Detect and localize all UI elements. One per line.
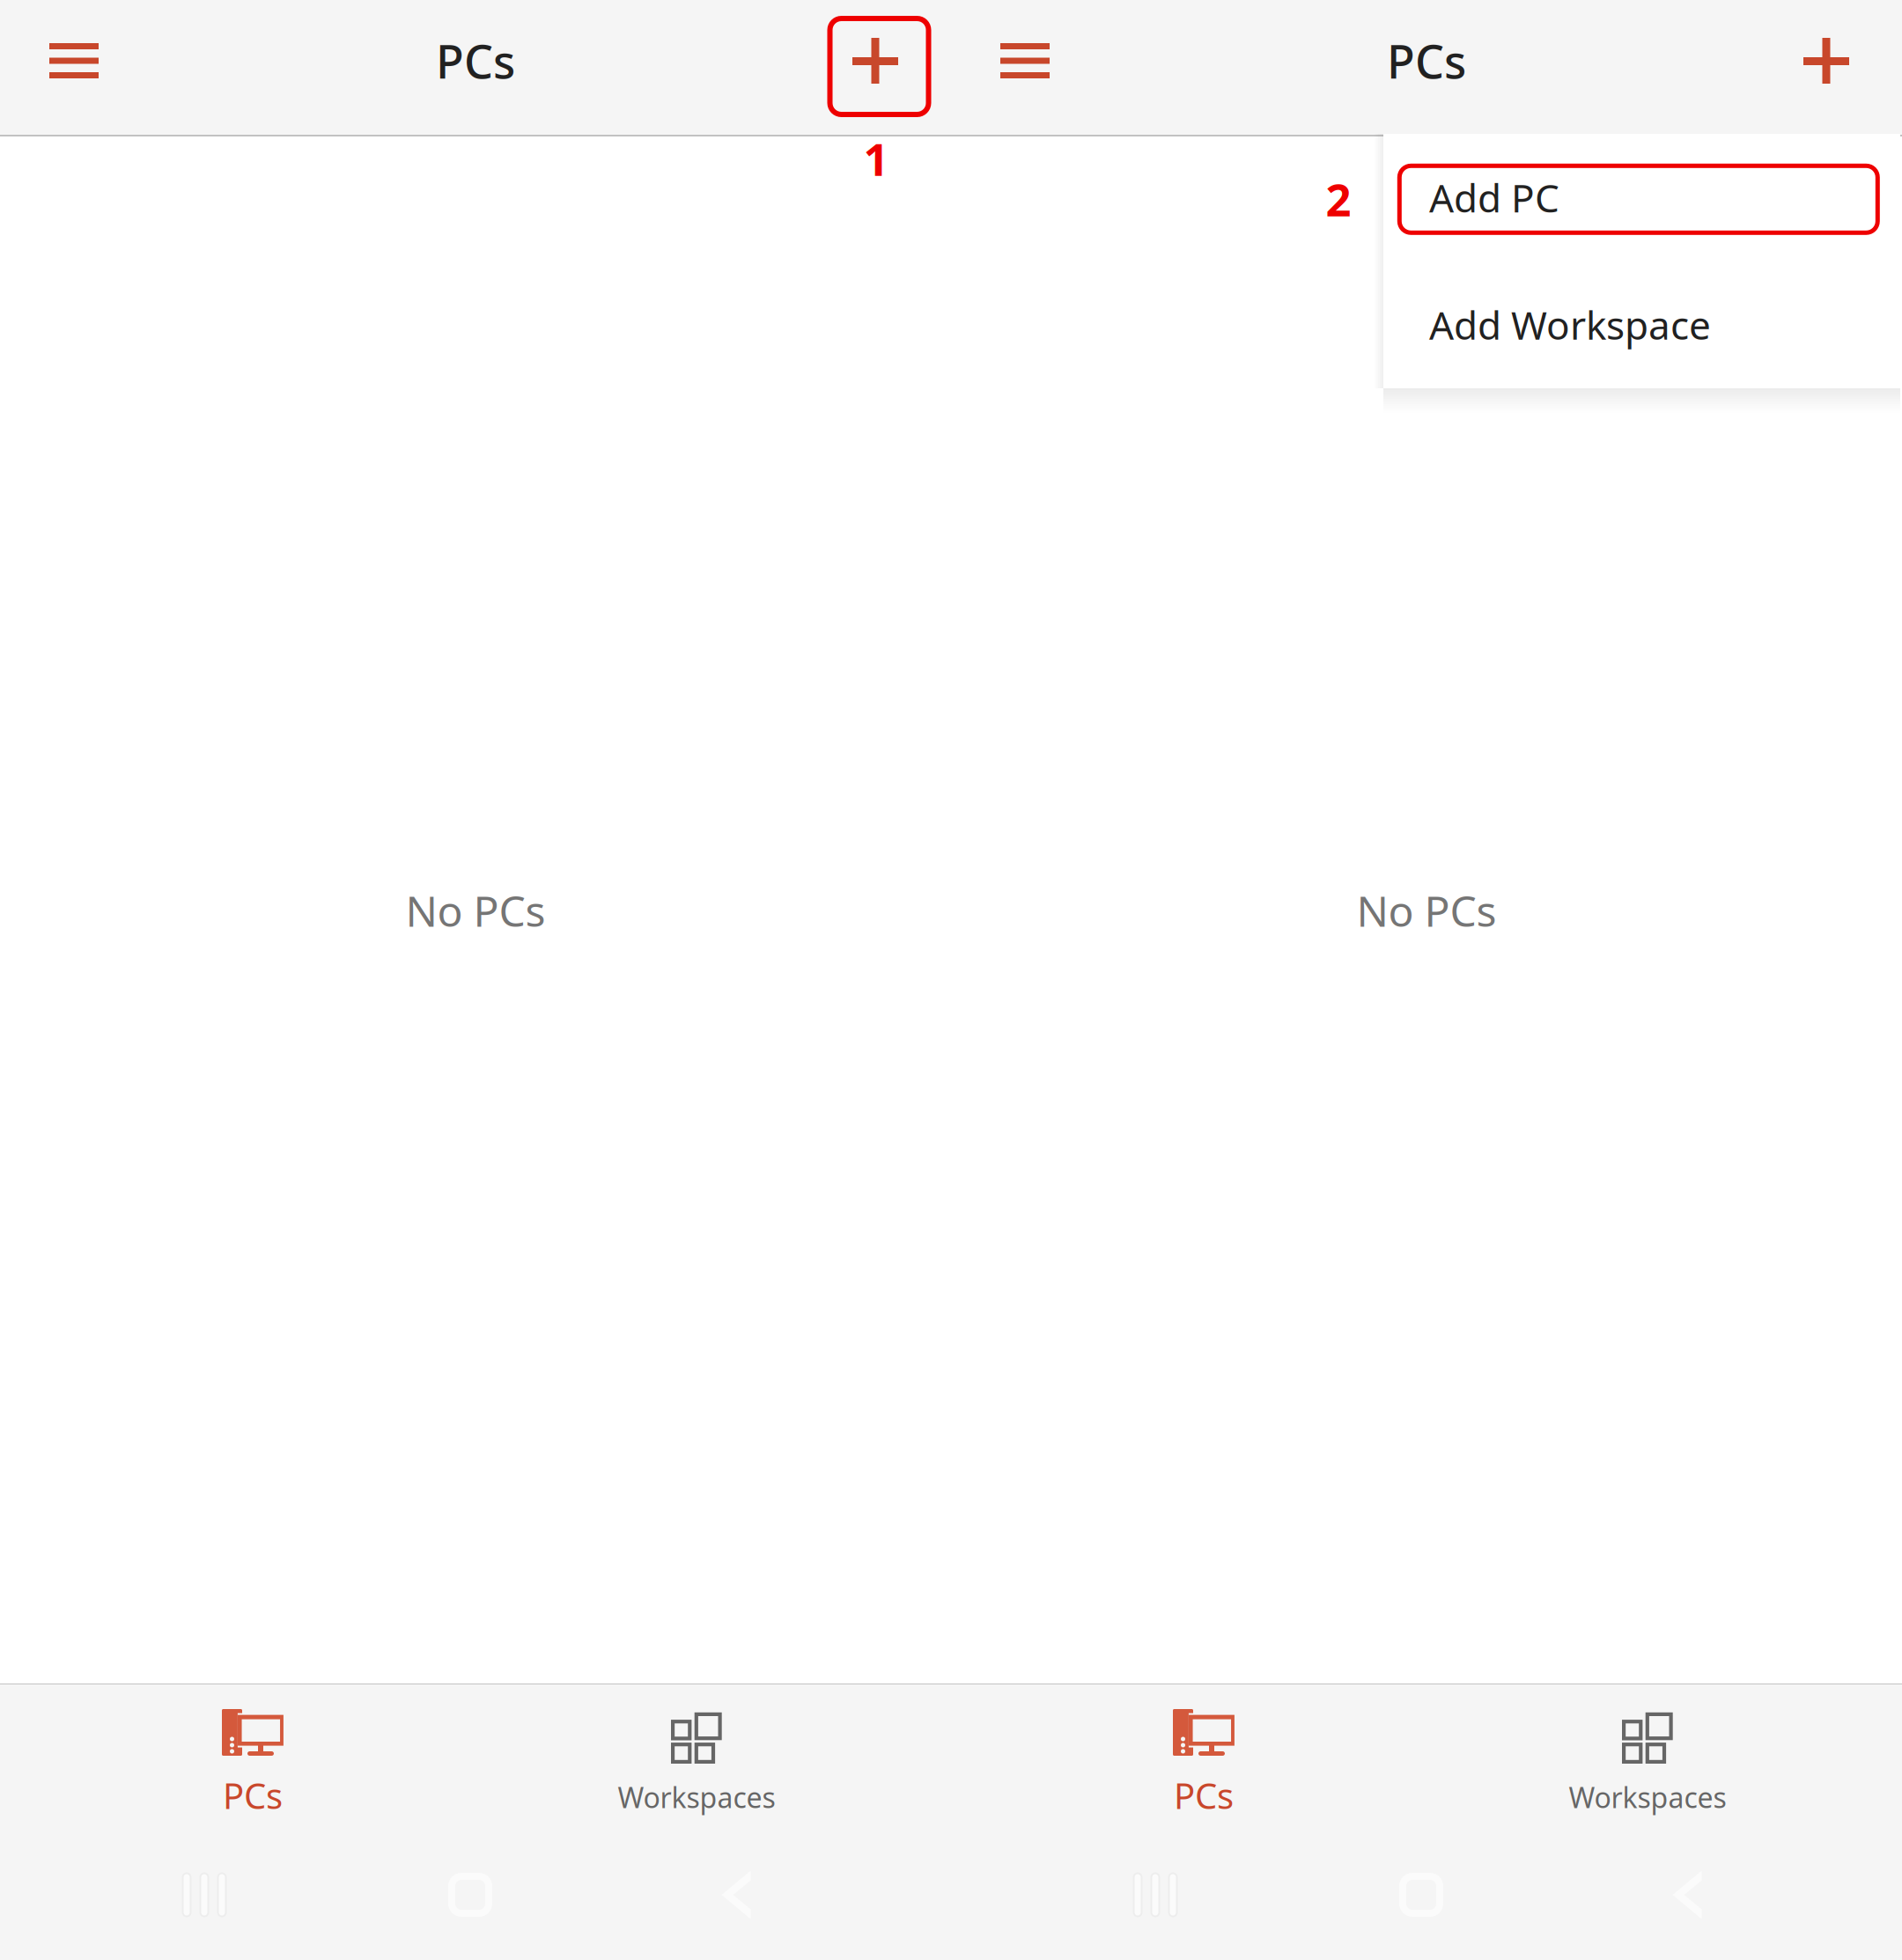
button[interactable]: Add <box>1777 11 1876 110</box>
button[interactable]: Add PC <box>1383 134 1900 261</box>
button[interactable]: Menu <box>25 11 123 110</box>
staticText: Workspaces <box>1569 1778 1726 1816</box>
staticText: No PCs <box>405 882 546 938</box>
button[interactable]: Menu <box>976 11 1074 110</box>
staticText: PCs <box>1174 1772 1234 1819</box>
staticText: PCs <box>436 30 515 91</box>
staticText: PCs <box>1387 30 1466 91</box>
staticText: Add PC <box>1429 172 1559 223</box>
button[interactable]: Add <box>826 11 925 110</box>
staticText: PCs <box>223 1772 283 1819</box>
button[interactable]: PCs <box>951 1684 1426 1834</box>
staticText: Add Workspace <box>1429 299 1711 350</box>
staticText: No PCs <box>1356 882 1497 938</box>
staticText: 1 <box>863 129 889 188</box>
staticText: 2 <box>1326 169 1351 229</box>
button[interactable]: PCs <box>0 1684 475 1834</box>
staticText: Workspaces <box>618 1778 775 1816</box>
button[interactable]: Workspaces <box>475 1684 951 1834</box>
button[interactable]: Workspaces <box>1426 1684 1902 1834</box>
button[interactable]: Add Workspace <box>1383 261 1900 388</box>
